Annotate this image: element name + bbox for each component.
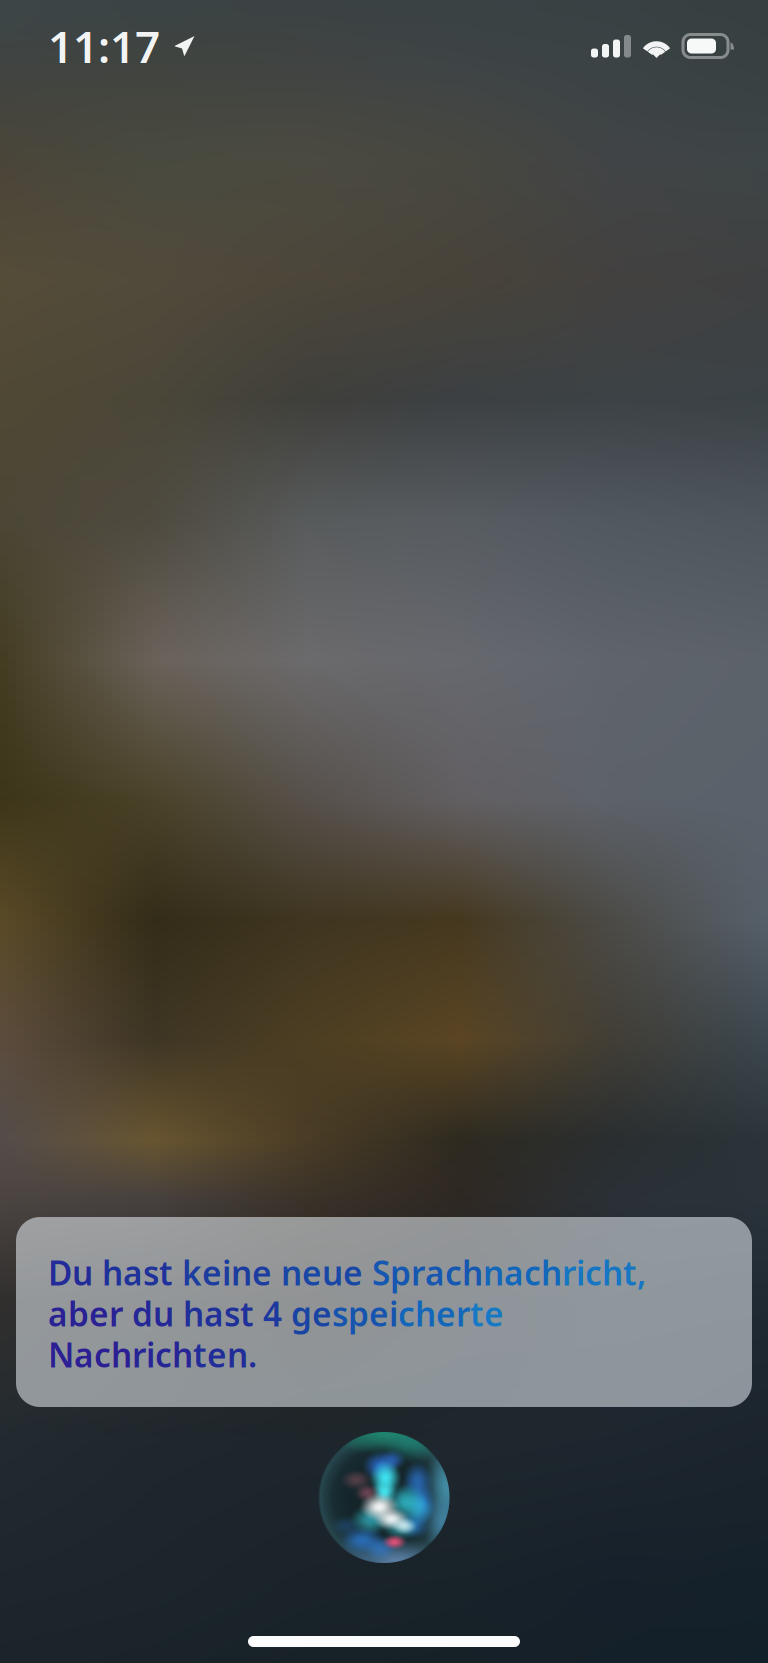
staticText: du	[132, 1291, 183, 1336]
staticText: Sprach	[372, 1250, 483, 1295]
staticText: spei	[332, 1291, 398, 1336]
staticText: aber	[48, 1291, 132, 1336]
staticText: ten.	[193, 1332, 257, 1377]
button[interactable]: Du	[16, 1217, 752, 1407]
staticText: neue	[281, 1250, 372, 1295]
staticText: hast	[102, 1250, 182, 1295]
staticText: hast	[183, 1291, 263, 1336]
staticText: rich	[132, 1332, 193, 1377]
staticText: ge	[291, 1291, 332, 1336]
staticText: 4	[263, 1291, 291, 1336]
staticText: keine	[182, 1250, 281, 1295]
staticText: Du	[48, 1250, 102, 1295]
staticText: nach	[483, 1250, 562, 1295]
staticText: richt,	[562, 1250, 646, 1295]
staticText: Nach	[48, 1332, 132, 1377]
staticText: cher	[398, 1291, 470, 1336]
staticText: te	[470, 1291, 504, 1336]
staticText: 11:17	[48, 17, 160, 75]
